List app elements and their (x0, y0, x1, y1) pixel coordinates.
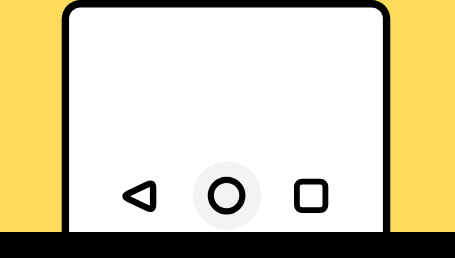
button[interactable]: Home (203, 172, 251, 220)
button[interactable]: Back (115, 172, 163, 220)
button[interactable]: Recent apps (287, 172, 335, 220)
